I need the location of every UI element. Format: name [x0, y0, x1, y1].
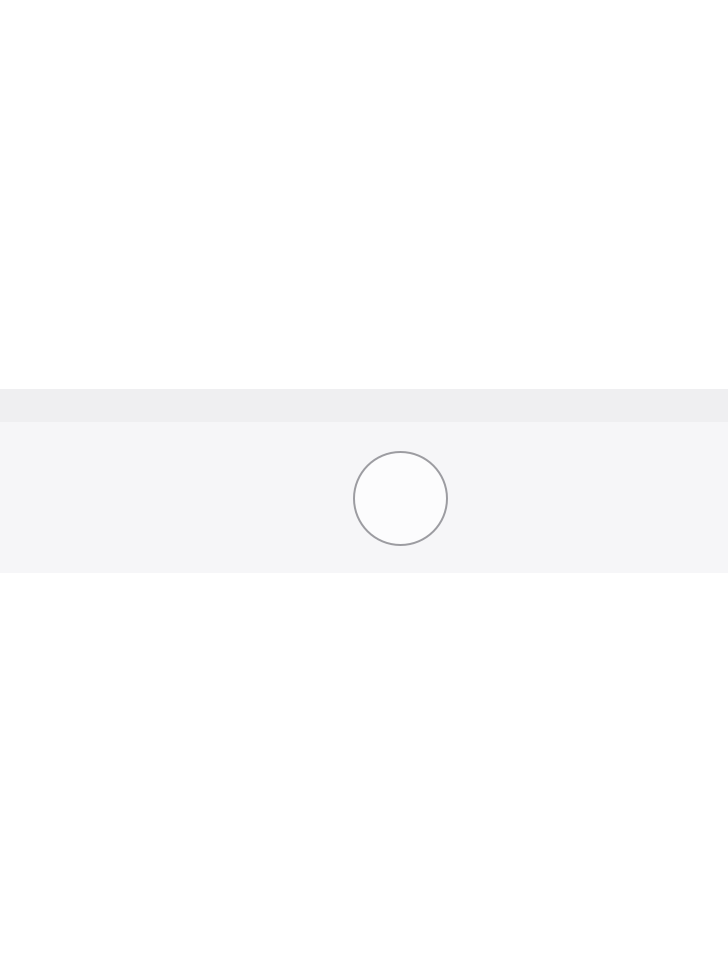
- button[interactable]: Capture: [354, 452, 447, 545]
